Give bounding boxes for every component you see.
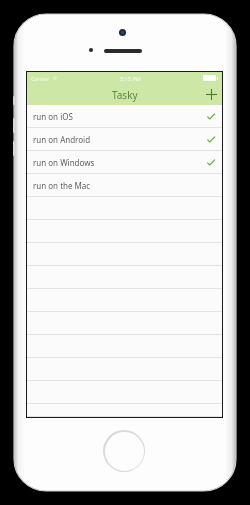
staticText: run on iOS <box>33 111 73 122</box>
staticText: 5:15 PM <box>120 75 141 82</box>
button[interactable]: Add task <box>200 84 222 105</box>
staticText: run on the Mac <box>33 180 91 191</box>
button[interactable]: run on iOS <box>27 105 222 128</box>
button[interactable]: run on Android <box>27 128 222 151</box>
staticText: run on Windows <box>33 157 95 168</box>
staticText: Carrier <box>31 75 50 82</box>
staticText: run on Android <box>33 134 91 145</box>
staticText: Tasky <box>112 88 138 102</box>
button[interactable]: run on Windows <box>27 151 222 174</box>
button[interactable]: Home <box>103 430 145 472</box>
button[interactable]: run on the Mac <box>27 174 222 197</box>
